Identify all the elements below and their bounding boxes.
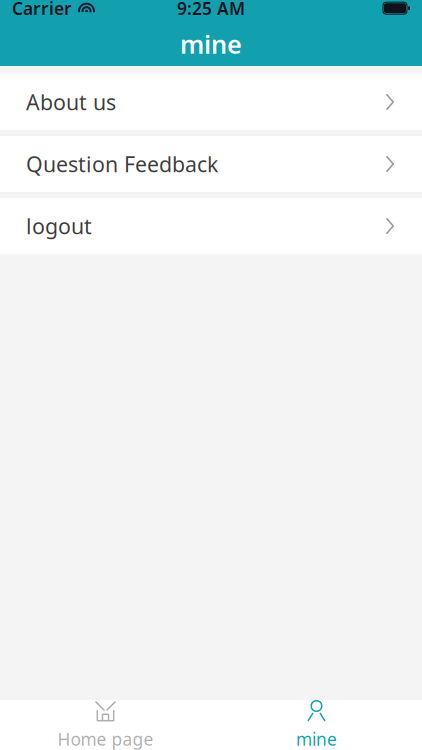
staticText: Home page — [57, 727, 153, 750]
staticText: mine — [180, 27, 242, 61]
staticText: logout — [26, 212, 92, 240]
button[interactable]: About us — [0, 74, 422, 130]
button[interactable]: Question Feedback — [0, 136, 422, 192]
staticText: mine — [296, 727, 337, 750]
button[interactable]: mine — [211, 700, 422, 750]
button[interactable]: logout — [0, 198, 422, 254]
staticText: 9:25 AM — [177, 0, 245, 20]
staticText: About us — [26, 88, 116, 116]
button[interactable]: Home page — [0, 700, 211, 750]
staticText: Question Feedback — [26, 150, 218, 178]
staticText: Carrier — [12, 0, 72, 20]
